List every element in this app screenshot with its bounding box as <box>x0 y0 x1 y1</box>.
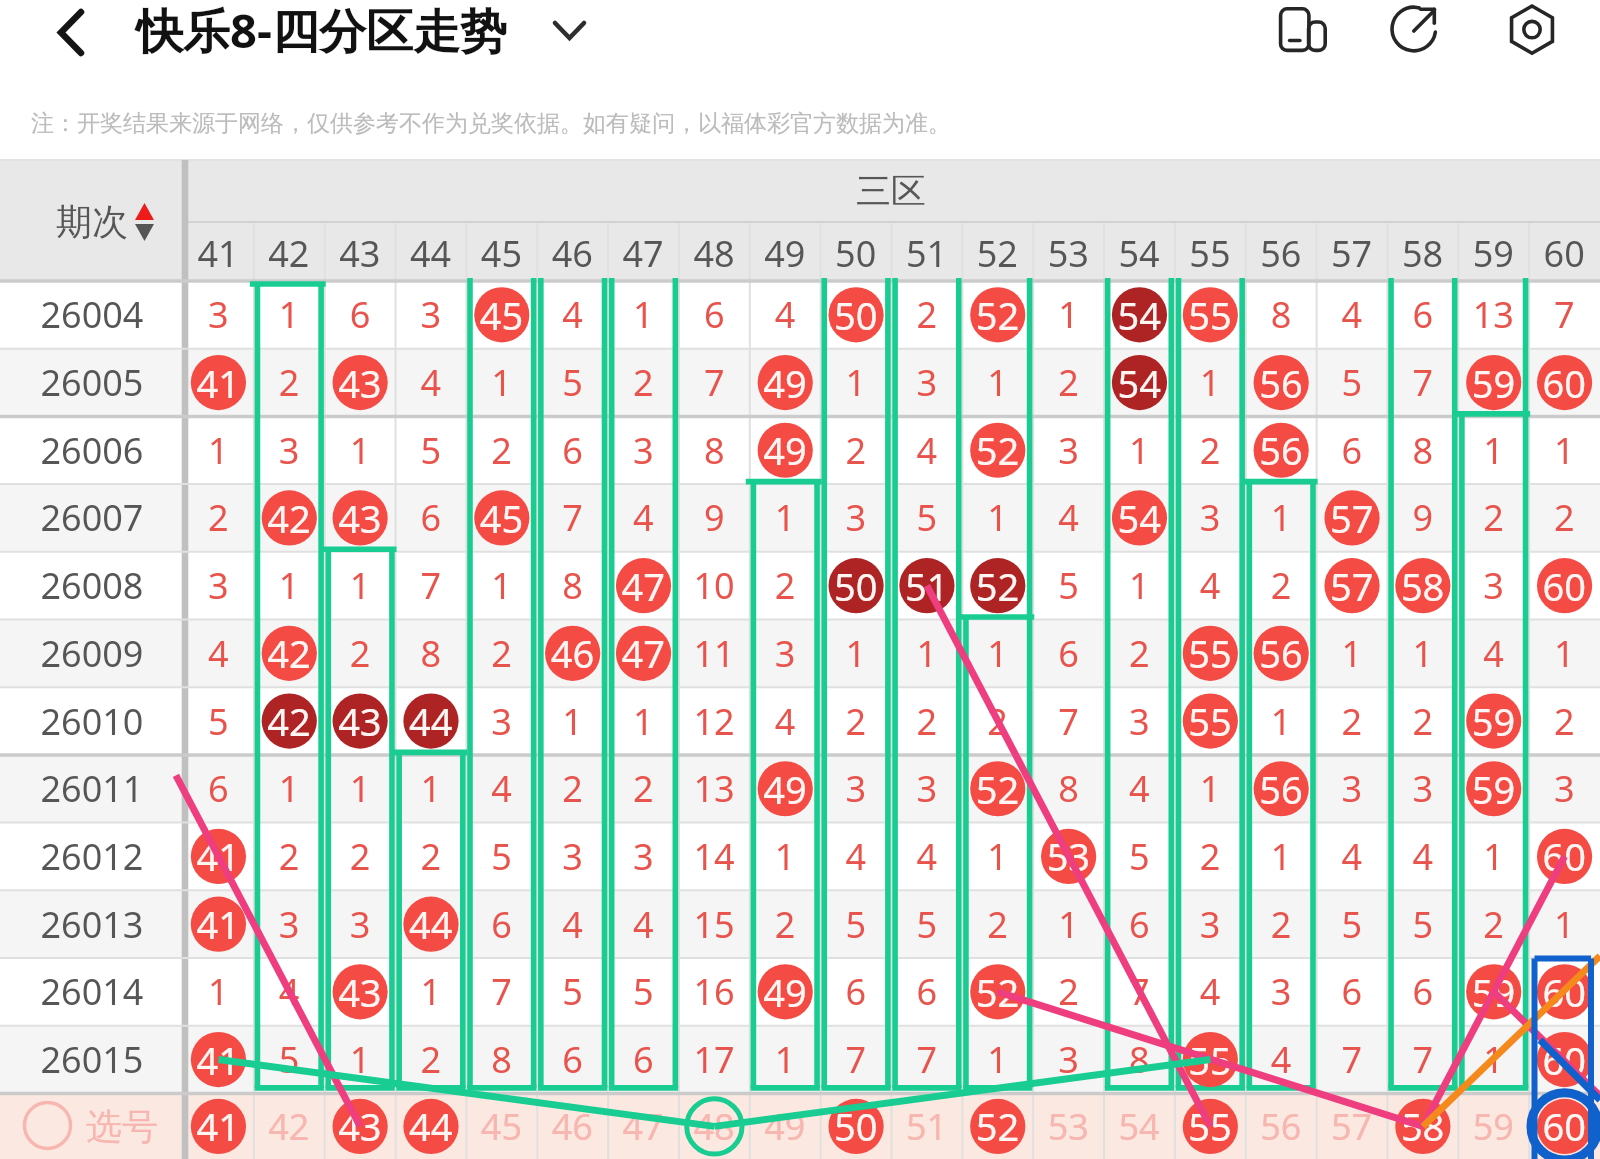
button[interactable]: Layout <box>1272 2 1334 64</box>
button[interactable]: Select 52 <box>962 1093 1033 1159</box>
button[interactable]: Select 58 <box>1387 1093 1458 1159</box>
button[interactable]: Select 47 <box>608 1093 679 1159</box>
button[interactable]: Select 49 <box>750 1093 821 1159</box>
button[interactable]: Select 53 <box>1033 1093 1104 1159</box>
button[interactable]: Select 46 <box>537 1093 608 1159</box>
button[interactable]: Settings <box>1501 2 1563 64</box>
button[interactable]: Select 55 <box>1175 1093 1246 1159</box>
button[interactable]: Select 45 <box>466 1093 537 1159</box>
button[interactable]: Select 43 <box>325 1093 396 1159</box>
button[interactable]: Select 48 <box>679 1093 750 1159</box>
button[interactable]: Select 44 <box>396 1093 467 1159</box>
button[interactable]: Share <box>1383 2 1445 64</box>
button[interactable]: Select 42 <box>254 1093 325 1159</box>
button[interactable]: Expand <box>540 4 600 64</box>
button[interactable]: Select 57 <box>1317 1093 1388 1159</box>
button[interactable]: Title <box>130 0 530 62</box>
button[interactable]: Select 51 <box>892 1093 963 1159</box>
button[interactable]: Select 50 <box>821 1093 892 1159</box>
button[interactable]: Select 59 <box>1458 1093 1529 1159</box>
button[interactable]: Select 41 <box>183 1093 254 1159</box>
button[interactable]: Back <box>36 4 102 70</box>
button[interactable]: Select 60 <box>1529 1093 1600 1159</box>
button[interactable]: Select 54 <box>1104 1093 1175 1159</box>
button[interactable]: Sort by period <box>0 160 183 281</box>
button[interactable]: Select 56 <box>1246 1093 1317 1159</box>
